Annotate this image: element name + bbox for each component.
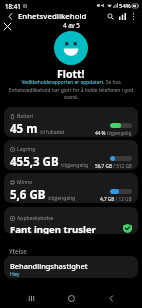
staticText: Minne	[17, 179, 33, 186]
button[interactable]: Behandlingshastighet	[4, 256, 138, 278]
button[interactable]: Recent apps	[22, 289, 40, 307]
staticText: 4,7 GB / 12 GB	[100, 196, 132, 202]
staticText: Høy	[10, 271, 20, 278]
staticText: 18:41	[5, 2, 21, 10]
staticText: 45 m	[10, 121, 38, 137]
staticText: tilgjengelig	[60, 162, 89, 169]
staticText: til fulladet	[39, 129, 65, 136]
staticText: Enhetsvedlikehold	[18, 11, 87, 22]
button[interactable]: Minne	[4, 173, 138, 203]
staticText: Batteri	[17, 113, 34, 120]
button[interactable]: Lagring	[4, 140, 138, 170]
staticText: Ytelse	[9, 247, 27, 255]
staticText: Appbeskyttelse	[17, 215, 54, 222]
staticText: 5,6 GB	[10, 187, 46, 203]
staticText: 44 % tilgjengelig	[95, 130, 132, 136]
button[interactable]: Close	[1, 20, 14, 33]
button[interactable]: Batteri	[4, 107, 138, 137]
staticText: Vedlikeholdsrapporten er oppdatert. Se h…	[5, 79, 137, 100]
button[interactable]: Appbeskyttelse	[4, 207, 138, 234]
staticText: Behandlingshastighet	[10, 261, 88, 271]
button[interactable]: Back	[4, 10, 17, 23]
button[interactable]: Search	[104, 10, 116, 22]
staticText: 56,7 GB / 512 GB	[95, 163, 132, 169]
staticText: 4 av 5	[63, 21, 80, 29]
button[interactable]: Back	[102, 289, 120, 307]
staticText: 455,3 GB	[10, 154, 59, 170]
button[interactable]: Home	[62, 289, 80, 307]
button[interactable]: Statistics	[116, 10, 128, 22]
button[interactable]: More options	[128, 11, 139, 22]
staticText: Fant ingen trusler	[10, 223, 96, 234]
staticText: Flott!	[57, 67, 85, 81]
staticText: tilgjengelig	[47, 195, 76, 202]
staticText: Lagring	[17, 146, 36, 153]
staticText: 54%	[119, 2, 131, 10]
